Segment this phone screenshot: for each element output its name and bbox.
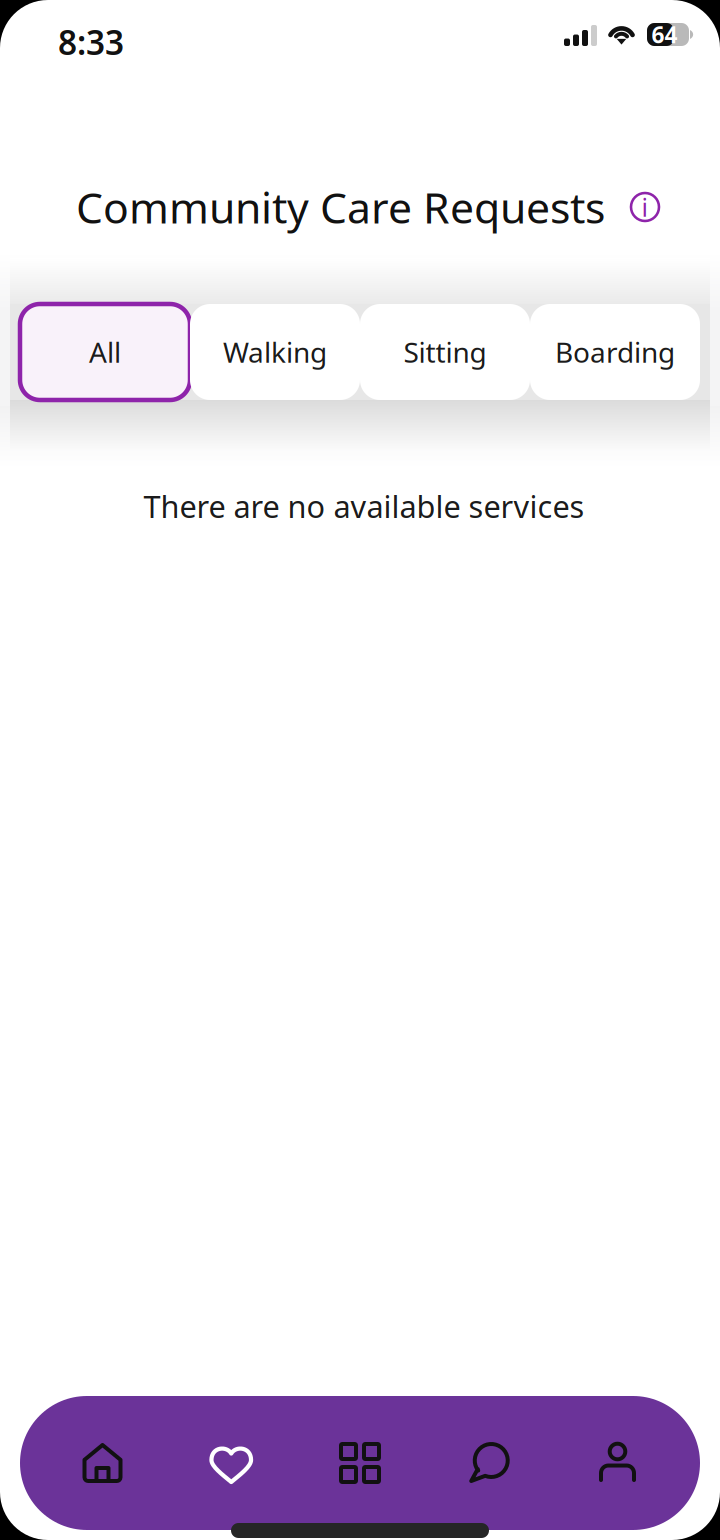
staticText: There are no available services: [143, 486, 584, 526]
button[interactable]: Home: [38, 1396, 167, 1530]
staticText: Boarding: [555, 333, 675, 371]
button[interactable]: Profile: [553, 1396, 682, 1530]
button[interactable]: Information: [630, 192, 660, 222]
button[interactable]: All: [20, 304, 190, 400]
staticText: i: [641, 190, 648, 224]
staticText: Walking: [223, 333, 327, 371]
staticText: Community Care Requests: [76, 179, 605, 235]
staticText: All: [89, 333, 121, 371]
button[interactable]: Sitting: [360, 304, 530, 400]
button[interactable]: Walking: [190, 304, 360, 400]
button[interactable]: Categories: [296, 1396, 424, 1530]
button[interactable]: Boarding: [530, 304, 700, 400]
staticText: 64: [651, 19, 677, 49]
button[interactable]: Favorites: [167, 1396, 296, 1530]
button[interactable]: Messages: [424, 1396, 553, 1530]
staticText: 8:33: [58, 20, 124, 64]
staticText: Sitting: [403, 333, 486, 371]
